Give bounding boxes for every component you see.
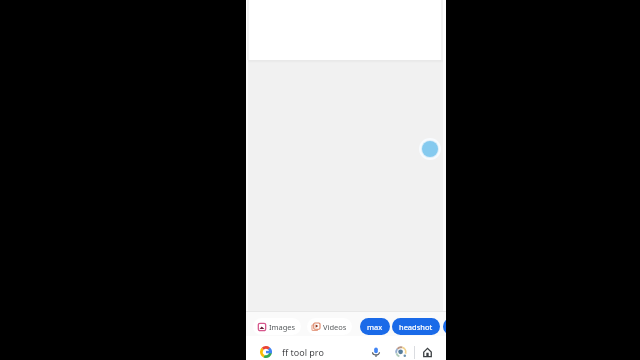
- button[interactable]: Loading: [419, 138, 441, 160]
- button[interactable]: Images: [253, 318, 301, 335]
- staticText: max: [367, 322, 383, 332]
- staticText: ff tool pro: [282, 346, 324, 358]
- staticText: Images: [269, 322, 296, 332]
- button[interactable]: Voice search: [369, 345, 383, 359]
- staticText: Videos: [323, 322, 347, 332]
- button[interactable]: ff tool pro: [246, 343, 369, 360]
- button[interactable]: Videos: [307, 318, 352, 335]
- button[interactable]: max: [360, 318, 390, 335]
- button[interactable]: Search with Google Lens: [394, 345, 408, 359]
- button[interactable]: headshot: [392, 318, 440, 335]
- staticText: headshot: [399, 322, 433, 332]
- button[interactable]: prompt: [443, 318, 446, 335]
- button[interactable]: Home: [421, 346, 434, 359]
